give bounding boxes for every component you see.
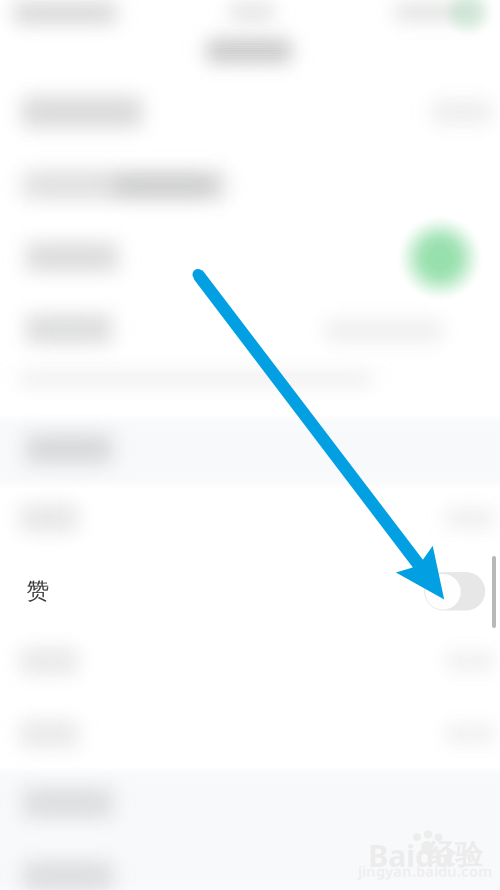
staticText: 经验 (427, 837, 483, 873)
staticText: 赞 (26, 577, 49, 605)
staticText: jingyan.baidu.com (358, 861, 492, 881)
button[interactable]: 赞 (0, 553, 500, 626)
staticText: Baidu (368, 834, 454, 876)
